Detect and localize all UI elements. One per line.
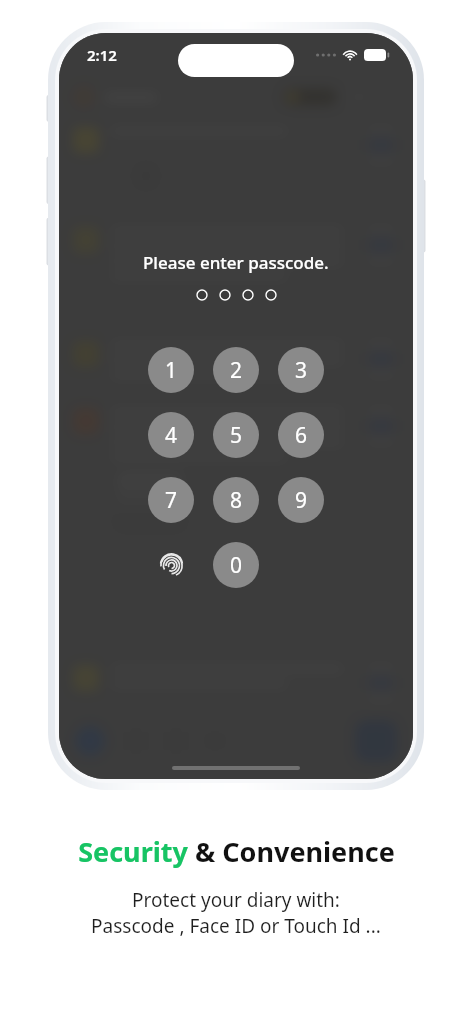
staticText: Protect your diary with: Passcode , Face… xyxy=(8,887,464,939)
button[interactable]: 9 xyxy=(278,477,324,523)
staticText: Please enter passcode. xyxy=(143,251,329,274)
staticText: 9 xyxy=(295,486,308,515)
staticText: 0 xyxy=(230,551,243,580)
button[interactable]: 3 xyxy=(278,347,324,393)
button[interactable]: 4 xyxy=(148,412,194,458)
staticText: 3 xyxy=(295,356,308,385)
button[interactable]: 5 xyxy=(213,412,259,458)
staticText: 7 xyxy=(165,486,178,515)
staticText: 8 xyxy=(230,486,243,515)
staticText: 1 xyxy=(165,356,178,385)
staticText: 2:12 xyxy=(87,45,117,65)
button[interactable]: 1 xyxy=(148,347,194,393)
staticText: 6 xyxy=(295,421,308,450)
staticText: 2 xyxy=(230,356,243,385)
button[interactable]: 0 xyxy=(213,542,259,588)
button[interactable]: 8 xyxy=(213,477,259,523)
button[interactable]: Unlock with fingerprint xyxy=(148,542,194,588)
staticText: Security & Convenience xyxy=(78,833,395,870)
button[interactable]: 2 xyxy=(213,347,259,393)
staticText: 4 xyxy=(165,421,178,450)
button[interactable]: 6 xyxy=(278,412,324,458)
staticText: 5 xyxy=(230,421,243,450)
button[interactable]: 7 xyxy=(148,477,194,523)
